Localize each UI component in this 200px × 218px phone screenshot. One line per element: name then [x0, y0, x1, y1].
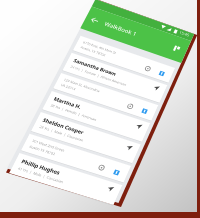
button[interactable]: [0, 0, 200, 218]
